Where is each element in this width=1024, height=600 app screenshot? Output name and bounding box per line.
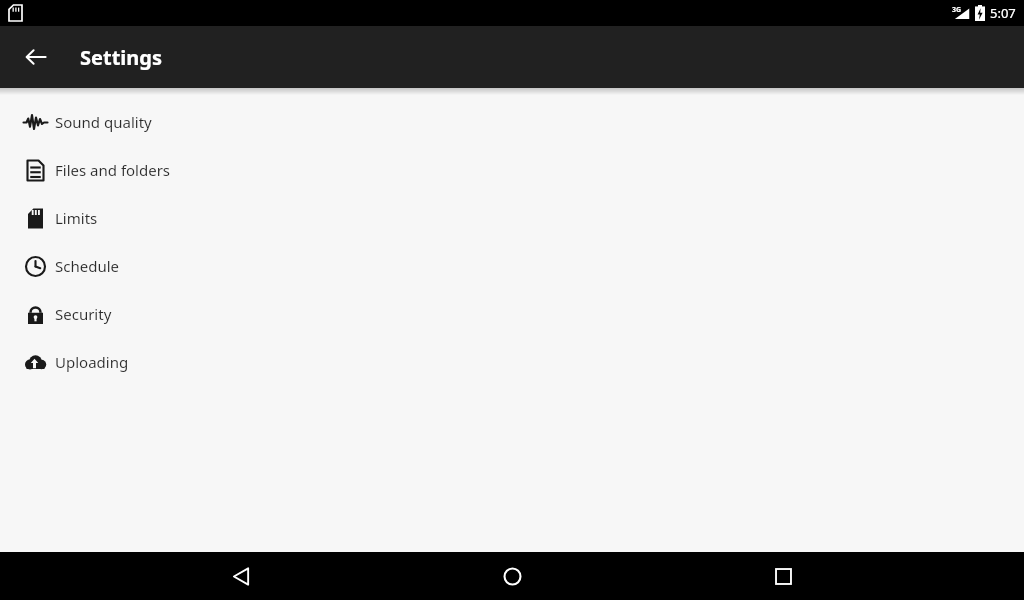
- staticText: Settings: [80, 44, 162, 71]
- button[interactable]: Recent apps: [753, 552, 813, 600]
- staticText: Security: [55, 304, 112, 324]
- button[interactable]: Schedule: [0, 242, 1024, 290]
- button[interactable]: Limits: [0, 194, 1024, 242]
- staticText: Limits: [55, 208, 98, 228]
- button[interactable]: Home: [482, 552, 542, 600]
- button[interactable]: Back: [211, 552, 271, 600]
- staticText: 3G: [952, 5, 962, 15]
- button[interactable]: Back: [12, 33, 60, 81]
- staticText: Sound quality: [55, 112, 152, 132]
- staticText: 5:07: [990, 4, 1016, 22]
- button[interactable]: Sound quality: [0, 98, 1024, 146]
- button[interactable]: Uploading: [0, 338, 1024, 386]
- staticText: Schedule: [55, 256, 119, 276]
- staticText: Uploading: [55, 352, 129, 372]
- staticText: Files and folders: [55, 160, 171, 180]
- button[interactable]: Files and folders: [0, 146, 1024, 194]
- button[interactable]: Security: [0, 290, 1024, 338]
